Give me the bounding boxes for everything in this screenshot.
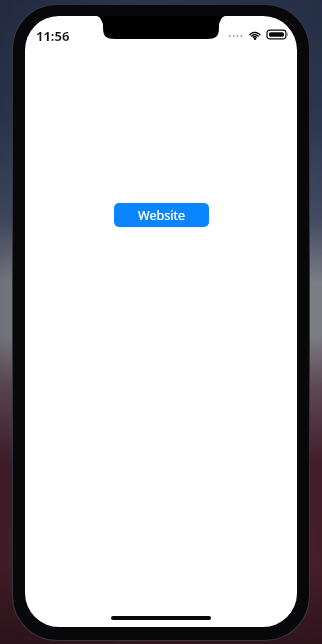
staticText: 11:56	[36, 27, 70, 45]
staticText: Website	[138, 207, 185, 224]
other: Home	[111, 616, 211, 620]
button[interactable]: Website	[114, 203, 209, 227]
